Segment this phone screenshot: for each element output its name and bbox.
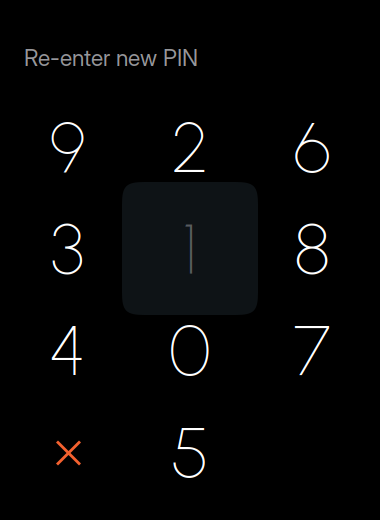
- button[interactable]: Delete: [6, 401, 128, 502]
- staticText: 7: [293, 308, 330, 393]
- staticText: 3: [50, 206, 84, 291]
- button[interactable]: 8: [251, 198, 373, 299]
- button[interactable]: 9: [6, 96, 128, 197]
- staticText: 0: [169, 308, 211, 393]
- button[interactable]: 4: [6, 299, 128, 400]
- staticText: 2: [171, 105, 208, 190]
- button[interactable]: 5: [129, 401, 251, 502]
- staticText: 1: [182, 206, 197, 291]
- staticText: 9: [49, 105, 85, 190]
- staticText: 4: [49, 308, 86, 393]
- button[interactable]: 0: [129, 299, 251, 400]
- button[interactable]: 7: [251, 299, 373, 400]
- button[interactable]: 1: [129, 198, 251, 299]
- button[interactable]: 2: [129, 96, 251, 197]
- staticText: 5: [171, 410, 209, 495]
- staticText: 8: [294, 206, 330, 291]
- staticText: Re-enter new PIN: [24, 44, 198, 71]
- staticText: 6: [293, 105, 330, 190]
- button[interactable]: 3: [6, 198, 128, 299]
- button[interactable]: 6: [251, 96, 373, 197]
